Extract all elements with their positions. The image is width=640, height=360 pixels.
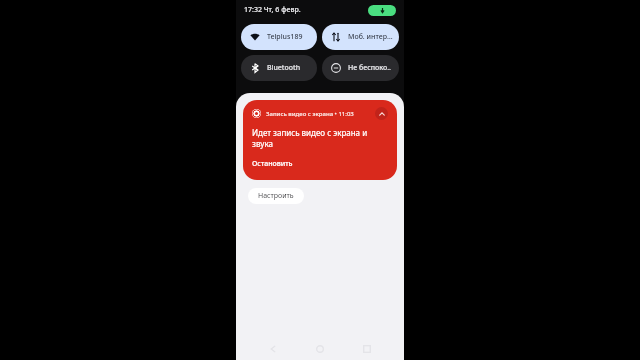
staticText: Запись видео с экрана • 11:03 [266,110,354,118]
button[interactable]: Battery saver [368,5,396,16]
staticText: Остановить [252,159,293,169]
button[interactable]: Остановить [252,158,293,170]
button[interactable]: Telplus189 [241,24,317,50]
staticText: Моб. интерн.. [348,32,393,42]
button[interactable]: Не беспоко.. [322,55,399,81]
button[interactable]: Collapse [375,107,388,120]
button[interactable]: Recents [357,339,377,359]
button[interactable]: Home [310,339,330,359]
button[interactable]: Настроить [248,188,304,204]
staticText: 17:32 Чт, 6 февр. [244,5,301,15]
staticText: Telplus189 [267,32,303,42]
staticText: Идет запись видео с экрана и звука [252,127,369,149]
button[interactable]: Bluetooth [241,55,317,81]
staticText: Не беспоко.. [348,63,392,73]
staticText: Bluetooth [267,63,301,73]
button[interactable]: Запись видео с экрана • 11:03 [243,100,397,180]
staticText: Настроить [258,191,294,201]
button[interactable]: Моб. интерн.. [322,24,399,50]
